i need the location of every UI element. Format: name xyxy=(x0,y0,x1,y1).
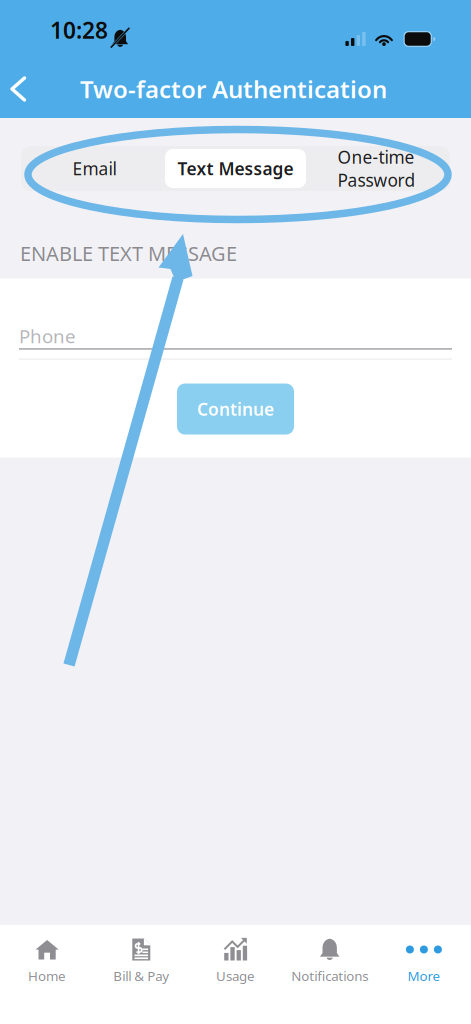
staticText: Notifications xyxy=(291,967,368,985)
button[interactable]: Continue xyxy=(177,383,294,434)
staticText: Two-factor Authentication xyxy=(80,73,387,105)
button[interactable]: Home xyxy=(0,937,94,985)
button[interactable]: Text Message xyxy=(165,149,306,188)
staticText: Continue xyxy=(197,397,274,420)
staticText: Text Message xyxy=(177,157,293,180)
staticText: 10:28 xyxy=(50,15,108,45)
button[interactable]: Back xyxy=(0,69,38,108)
button[interactable]: More xyxy=(377,937,471,985)
staticText: Bill & Pay xyxy=(113,967,169,985)
staticText: Phone xyxy=(19,324,76,348)
staticText: ENABLE TEXT MESSAGE xyxy=(20,240,237,267)
staticText: Email xyxy=(72,157,116,180)
staticText: One-time Password xyxy=(337,145,415,191)
staticText: Usage xyxy=(216,967,255,985)
staticText: Home xyxy=(28,967,66,985)
button[interactable]: Email xyxy=(24,149,165,188)
button[interactable]: One-time Password xyxy=(306,149,447,188)
button[interactable]: Notifications xyxy=(283,937,377,985)
staticText: More xyxy=(407,967,440,985)
button[interactable]: Bill & Pay xyxy=(94,937,188,985)
button[interactable]: Usage xyxy=(188,937,283,985)
